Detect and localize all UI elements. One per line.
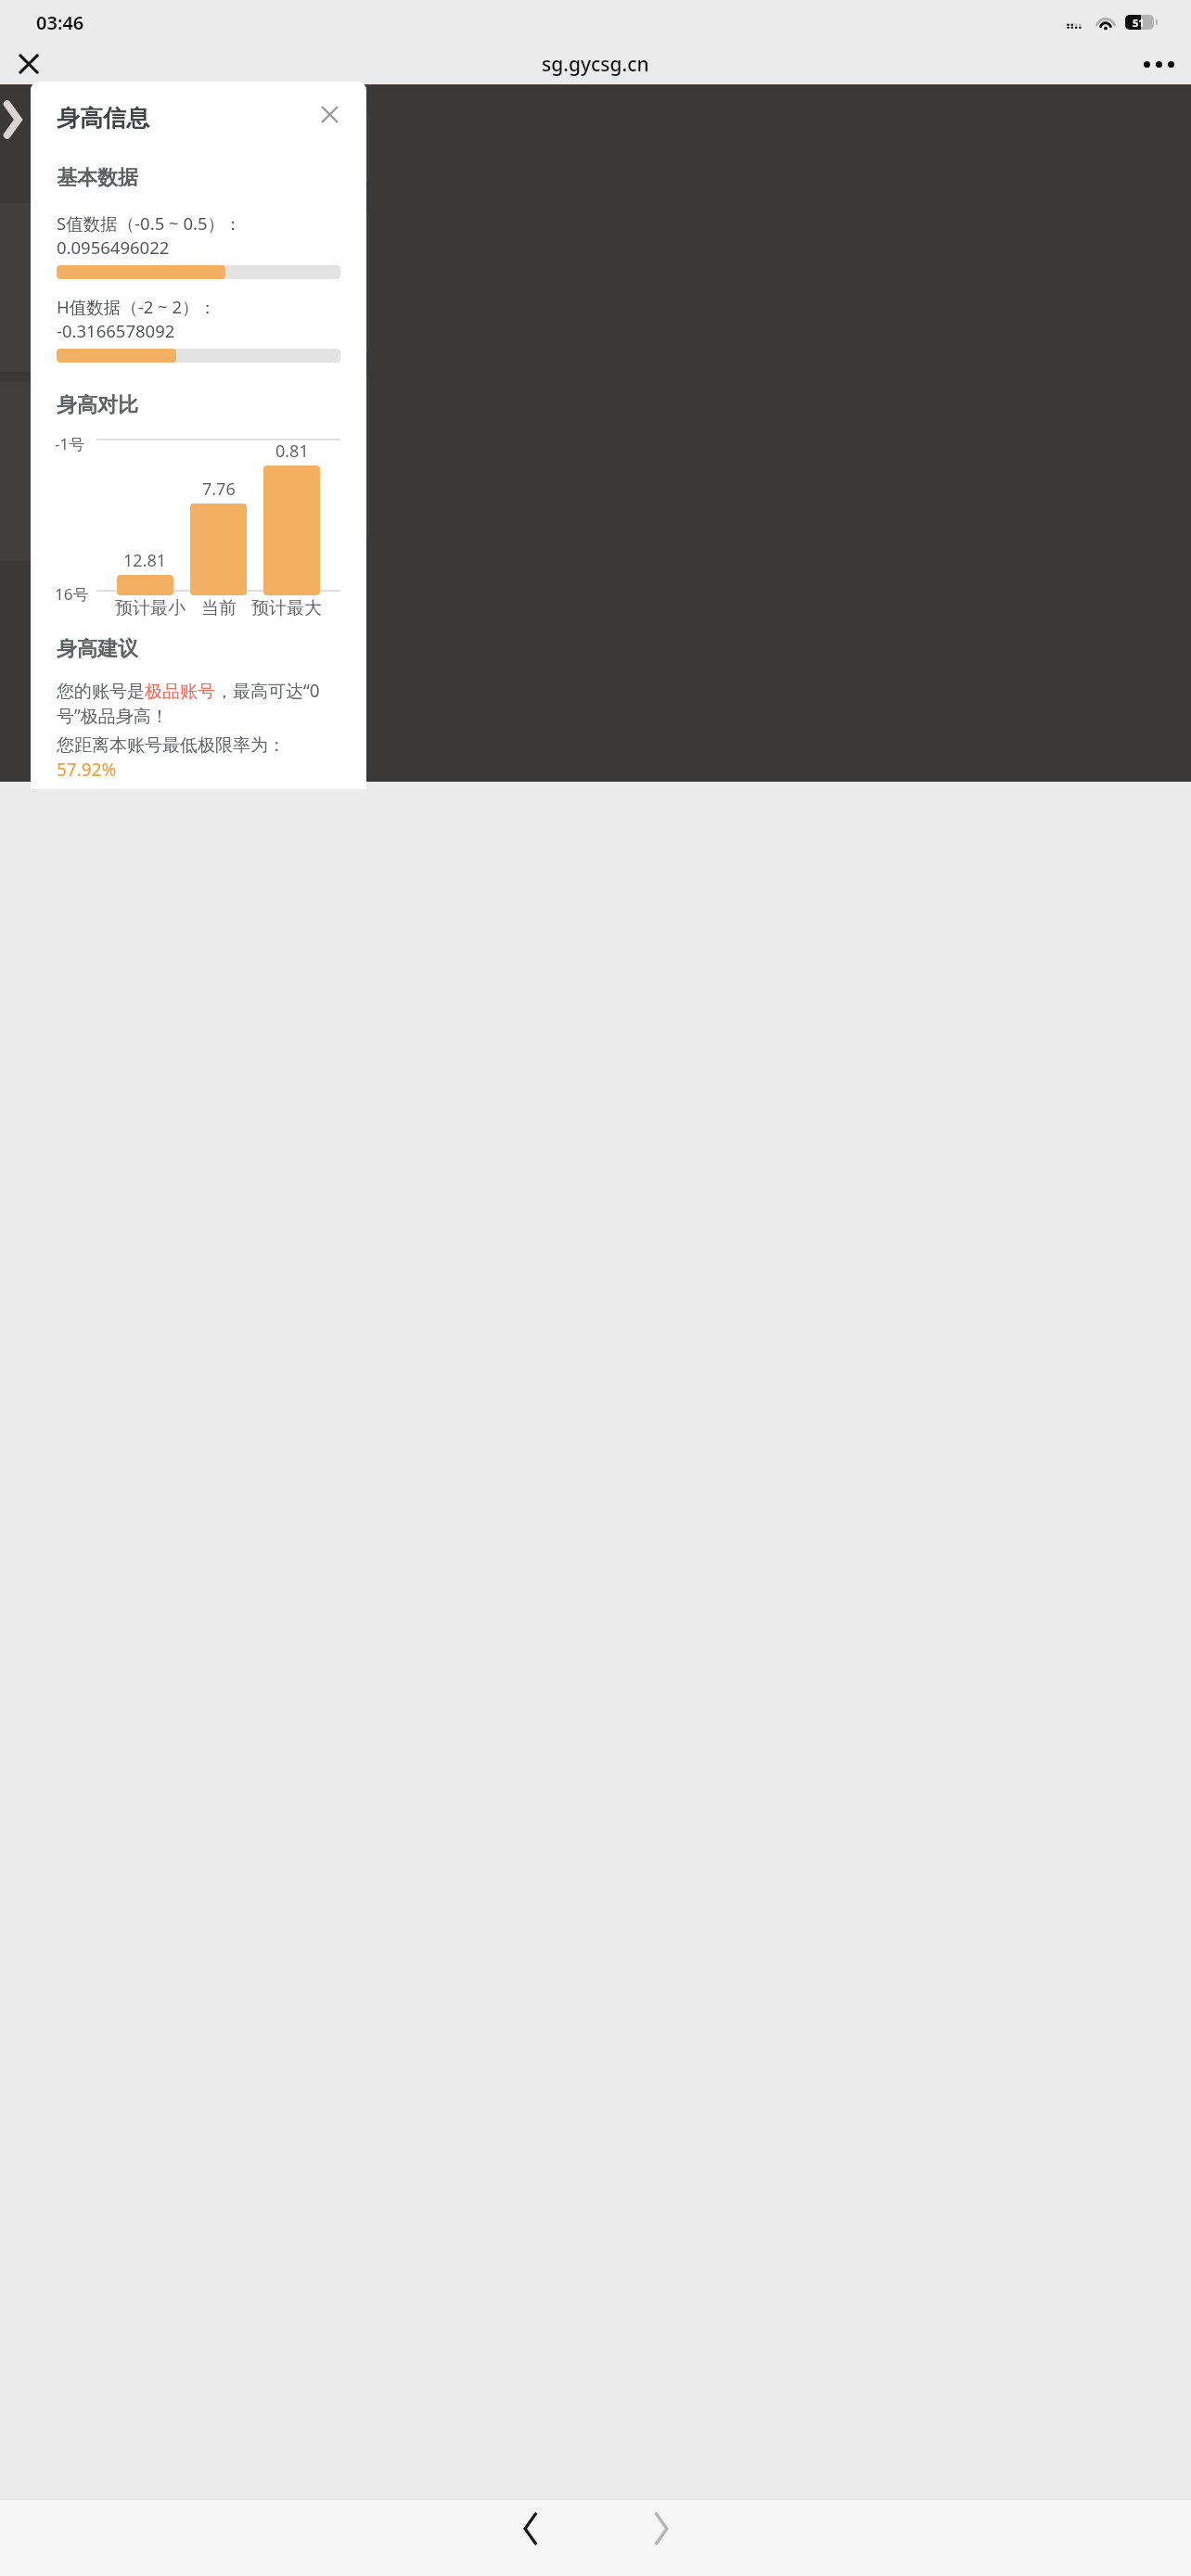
staticText: 预计最大 <box>251 597 322 619</box>
staticText: 7.76 <box>202 478 236 501</box>
button[interactable]: Close <box>7 44 50 84</box>
button[interactable] <box>117 575 173 595</box>
other: Next <box>1 99 23 140</box>
staticText: 12.81 <box>123 549 167 572</box>
staticText: 51 <box>1133 16 1145 30</box>
button[interactable]: More options <box>1137 44 1180 84</box>
staticText: S值数据（-0.5 ~ 0.5）： 0.0956496022 <box>57 211 340 259</box>
staticText: 预计最小 <box>115 597 186 619</box>
staticText: 您的账号是极品账号，最高可达“0号”极品身高！ <box>57 679 340 728</box>
staticText: 03:46 <box>36 10 84 35</box>
staticText: 身高建议 <box>57 636 138 662</box>
staticText: 您距离本账号最低极限率为：57.92% <box>57 734 340 782</box>
staticText: 身高对比 <box>57 392 138 418</box>
staticText: sg.gycsg.cn <box>542 51 649 78</box>
staticText: 16号 <box>55 583 89 605</box>
staticText: 身高信息 <box>57 104 149 133</box>
staticText: H值数据（-2 ~ 2）： -0.3166578092 <box>57 295 340 342</box>
staticText: -1号 <box>55 433 85 454</box>
button[interactable]: Back <box>491 2503 569 2555</box>
button[interactable]: Close dialog <box>311 96 348 133</box>
button[interactable] <box>190 504 247 595</box>
staticText: 基本数据 <box>57 165 138 191</box>
button[interactable]: Forward <box>622 2503 700 2555</box>
staticText: 0.81 <box>275 440 309 463</box>
staticText: 当前 <box>201 597 237 619</box>
button[interactable] <box>263 465 320 595</box>
